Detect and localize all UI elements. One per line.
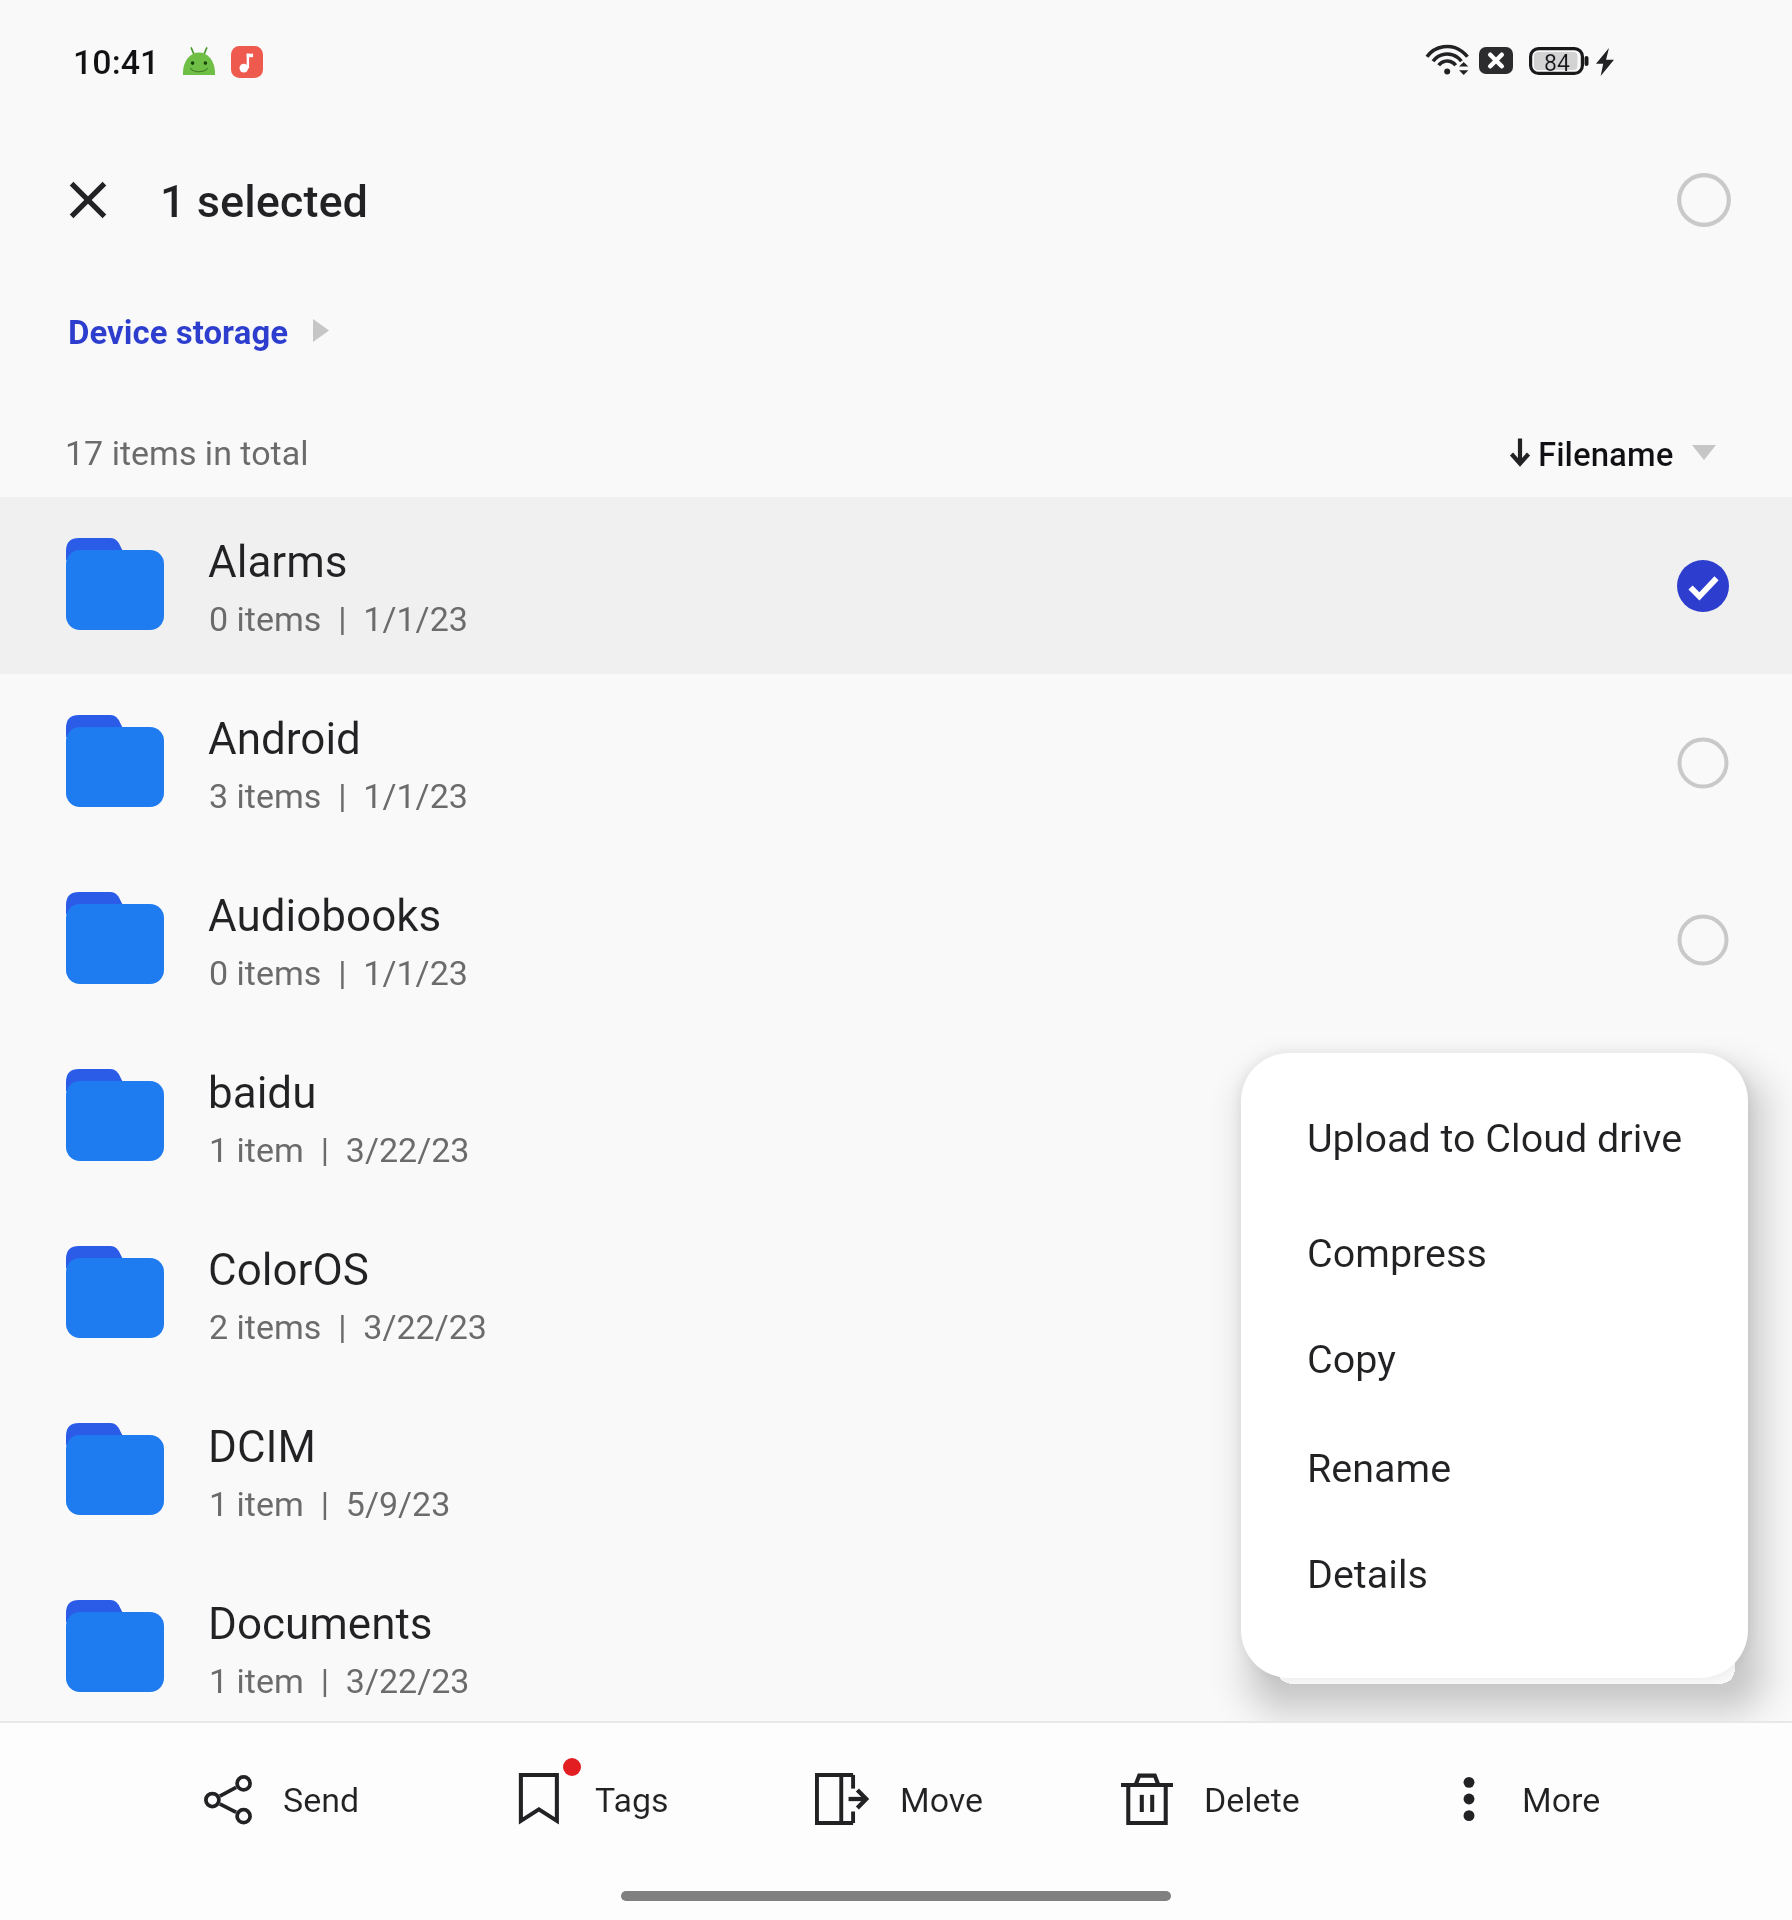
staticText: Rename: [1307, 1445, 1452, 1491]
staticText: 1 item | 5/9/23: [209, 1484, 451, 1524]
staticText: Tags: [595, 1780, 669, 1820]
staticText: 0 items | 1/1/23: [209, 599, 468, 639]
button[interactable]: Compress: [1241, 1207, 1748, 1299]
staticText: Move: [900, 1780, 984, 1820]
button[interactable]: Select Android: [1655, 674, 1751, 851]
button[interactable]: Select Documents: [1655, 1559, 1751, 1736]
staticText: Delete: [1204, 1780, 1300, 1820]
staticText: 0 items | 1/1/23: [209, 953, 468, 993]
staticText: baidu: [208, 1067, 317, 1119]
button[interactable]: Close selection: [48, 160, 128, 240]
button[interactable]: baidu: [0, 1028, 1792, 1205]
button[interactable]: Upload to Cloud drive: [1241, 1092, 1748, 1184]
staticText: Send: [283, 1780, 360, 1820]
button[interactable]: Copy: [1241, 1313, 1748, 1405]
button[interactable]: Alarms: [0, 497, 1792, 674]
button[interactable]: Details: [1241, 1528, 1748, 1620]
button[interactable]: Audiobooks: [0, 851, 1792, 1028]
staticText: Audiobooks: [208, 890, 442, 942]
staticText: ColorOS: [208, 1244, 369, 1296]
staticText: 1 item | 3/22/23: [209, 1130, 470, 1170]
staticText: 1 selected: [160, 175, 368, 228]
button[interactable]: Filename: [1488, 410, 1736, 510]
staticText: Filename: [1538, 435, 1674, 474]
staticText: Alarms: [208, 536, 348, 588]
button[interactable]: Select baidu: [1655, 1028, 1751, 1205]
button[interactable]: Delete: [1087, 1742, 1334, 1860]
staticText: Android: [208, 713, 361, 765]
staticText: Device storage: [68, 313, 289, 352]
staticText: 10:41: [73, 42, 160, 82]
button[interactable]: Select ColorOS: [1655, 1205, 1751, 1382]
button[interactable]: More: [1409, 1742, 1652, 1860]
button[interactable]: Deselect Alarms: [1655, 497, 1751, 674]
staticText: DCIM: [208, 1421, 316, 1473]
staticText: 3 items | 1/1/23: [209, 776, 468, 816]
button[interactable]: Select DCIM: [1655, 1382, 1751, 1559]
button[interactable]: Send: [168, 1742, 413, 1860]
staticText: Compress: [1307, 1230, 1487, 1276]
staticText: 2 items | 3/22/23: [209, 1307, 487, 1347]
button[interactable]: Select Audiobooks: [1655, 851, 1751, 1028]
button[interactable]: ColorOS: [0, 1205, 1792, 1382]
staticText: 84: [1544, 50, 1570, 77]
staticText: 17 items in total: [65, 433, 309, 473]
button[interactable]: Move: [781, 1742, 1030, 1860]
button[interactable]: Tags: [482, 1742, 725, 1860]
button[interactable]: Documents: [0, 1559, 1792, 1736]
button[interactable]: Rename: [1241, 1422, 1748, 1514]
button[interactable]: Android: [0, 674, 1792, 851]
staticText: Copy: [1307, 1336, 1396, 1382]
staticText: Details: [1307, 1551, 1428, 1597]
button[interactable]: DCIM: [0, 1382, 1792, 1559]
button[interactable]: Select all: [1656, 152, 1752, 248]
staticText: Upload to Cloud drive: [1307, 1115, 1683, 1161]
button[interactable]: Device storage: [50, 296, 347, 368]
staticText: Documents: [208, 1598, 433, 1650]
staticText: 1 item | 3/22/23: [209, 1661, 470, 1701]
staticText: More: [1522, 1780, 1601, 1820]
